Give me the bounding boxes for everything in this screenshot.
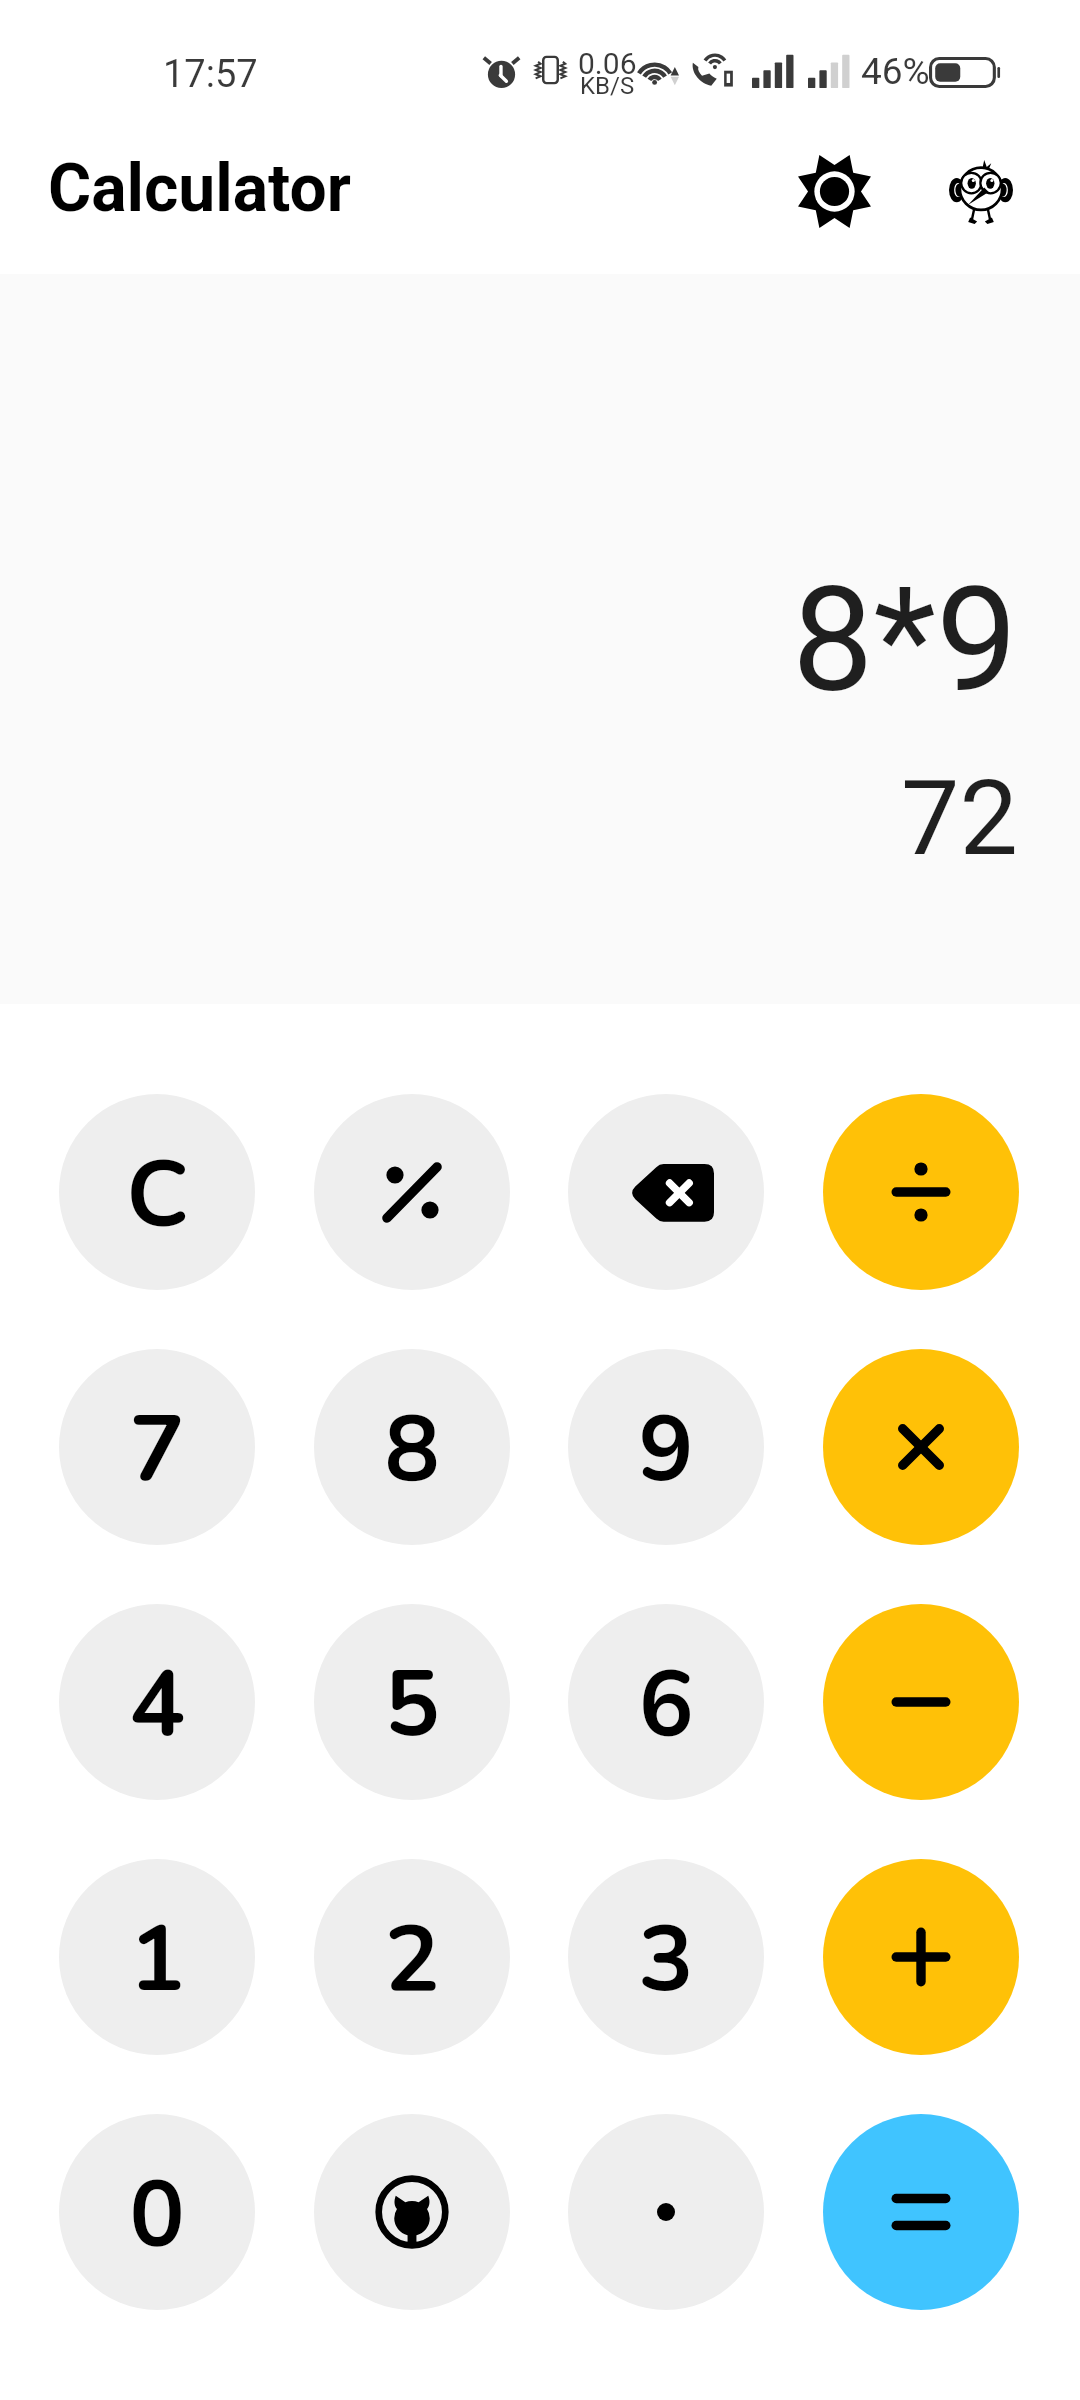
staticText: 0.06 — [578, 46, 637, 81]
staticText: 1 — [129, 1897, 185, 2022]
button[interactable]: 7 — [59, 1349, 255, 1545]
button[interactable]: 4 — [59, 1604, 255, 1800]
button[interactable]: Plus — [823, 1859, 1019, 2055]
staticText: 3 — [638, 1897, 694, 2022]
button[interactable]: GitHub — [314, 2114, 510, 2310]
staticText: 8*9 — [792, 555, 1018, 725]
staticText: 5 — [384, 1642, 440, 1767]
button[interactable]: Decimal point — [568, 2114, 764, 2310]
staticText: 7 — [129, 1387, 185, 1512]
button[interactable]: Multiply — [823, 1349, 1019, 1545]
staticText: 46% — [861, 50, 930, 93]
button[interactable]: 5 — [314, 1604, 510, 1800]
button[interactable]: Divide — [823, 1094, 1019, 1290]
button[interactable]: About — [928, 139, 1034, 245]
staticText: Calculator — [48, 150, 352, 227]
button[interactable]: 2 — [314, 1859, 510, 2055]
button[interactable]: Equals — [823, 2114, 1019, 2310]
button[interactable]: 0 — [59, 2114, 255, 2310]
button[interactable]: Minus — [823, 1604, 1019, 1800]
staticText: KB/S — [580, 72, 635, 100]
button[interactable]: Settings — [781, 138, 887, 244]
staticText: 2 — [384, 1897, 440, 2022]
staticText: 8 — [384, 1387, 440, 1512]
button[interactable]: C — [59, 1094, 255, 1290]
staticText: 0 — [129, 2152, 185, 2277]
staticText: 17:57 — [163, 52, 258, 97]
button[interactable]: 3 — [568, 1859, 764, 2055]
staticText: 72 — [901, 758, 1018, 880]
button[interactable]: 1 — [59, 1859, 255, 2055]
button[interactable]: Backspace — [568, 1094, 764, 1290]
button[interactable]: 8 — [314, 1349, 510, 1545]
staticText: C — [126, 1132, 189, 1257]
button[interactable]: 6 — [568, 1604, 764, 1800]
button[interactable]: % — [314, 1094, 510, 1290]
staticText: 4 — [129, 1642, 185, 1767]
button[interactable]: 9 — [568, 1349, 764, 1545]
staticText: 9 — [638, 1387, 694, 1512]
staticText: 6 — [638, 1642, 694, 1767]
